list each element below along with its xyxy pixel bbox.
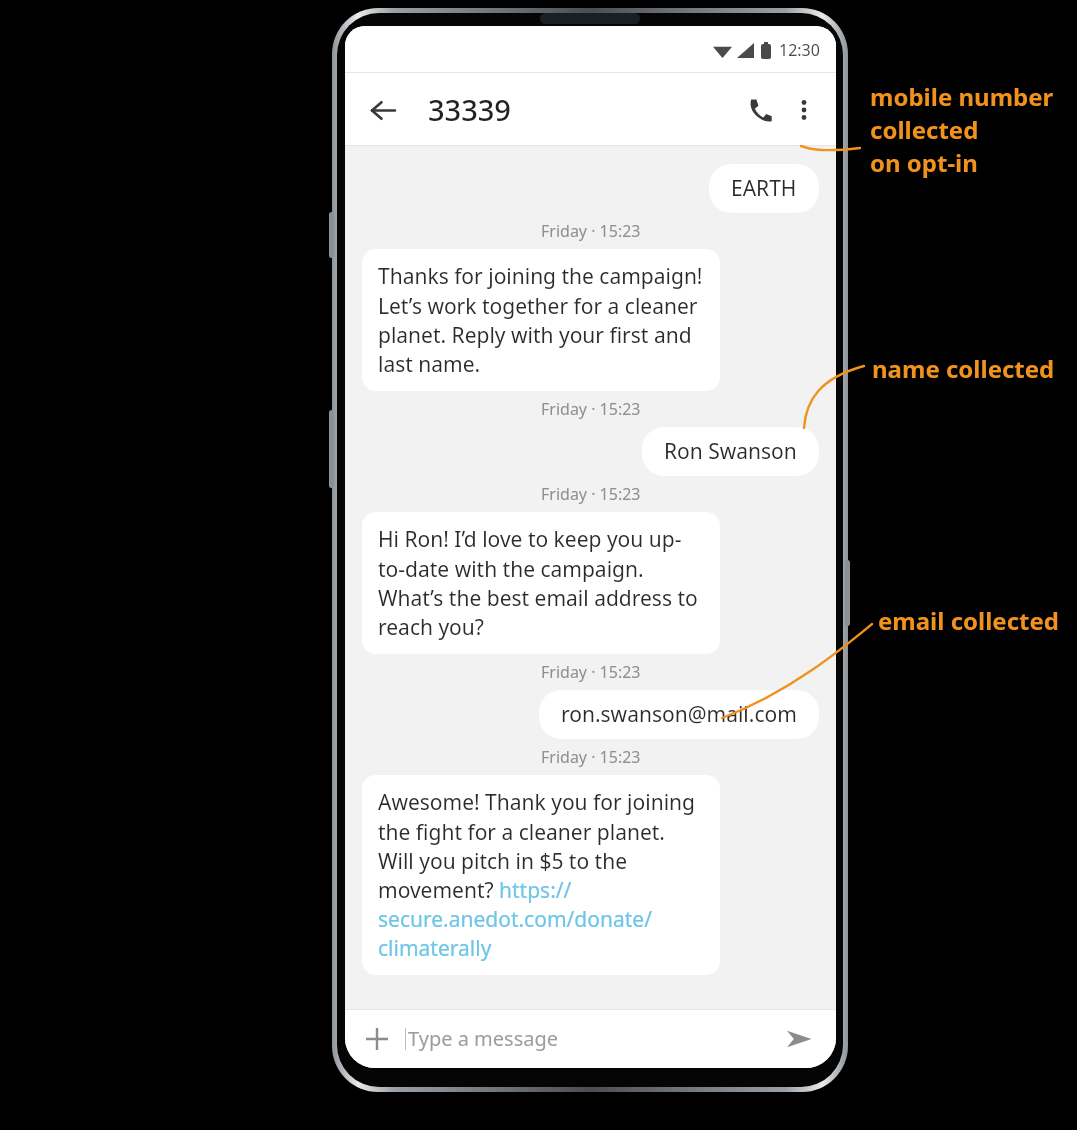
staticText: ron.swanson@mail.com: [561, 700, 797, 729]
staticText: Thanks for joining the campaign! Let’s w…: [378, 262, 704, 378]
staticText: Friday · 15:23: [541, 483, 641, 505]
staticText: name collected: [872, 352, 1055, 385]
button[interactable]: More options: [784, 90, 824, 130]
staticText: Hi Ron! I’d love to keep you up-to-date …: [378, 525, 704, 641]
button[interactable]: Awesome! Thank you for joining the fight…: [362, 775, 720, 975]
staticText: Type a message: [408, 1025, 559, 1052]
button[interactable]: Send: [778, 1018, 820, 1060]
button[interactable]: Ron Swanson: [642, 427, 819, 476]
button[interactable]: Type a message: [408, 1025, 778, 1052]
staticText: email collected: [878, 604, 1059, 637]
staticText: 12:30: [779, 39, 820, 61]
staticText: EARTH: [731, 174, 797, 203]
staticText: mobile number: [870, 80, 1054, 113]
button[interactable]: Add attachment: [357, 1019, 397, 1059]
staticText: collected: [870, 113, 979, 146]
staticText: Friday · 15:23: [541, 398, 641, 420]
button[interactable]: Call: [736, 86, 784, 134]
staticText: Friday · 15:23: [541, 220, 641, 242]
staticText: Friday · 15:23: [541, 661, 641, 683]
button[interactable]: Back: [361, 88, 405, 132]
staticText: 33339: [428, 90, 511, 129]
staticText: Friday · 15:23: [541, 746, 641, 768]
button[interactable]: EARTH: [709, 164, 819, 213]
button[interactable]: Thanks for joining the campaign! Let’s w…: [362, 249, 720, 391]
staticText: Ron Swanson: [664, 437, 797, 466]
staticText: on opt-in: [870, 146, 978, 179]
staticText: Awesome! Thank you for joining the fight…: [378, 788, 704, 962]
button[interactable]: ron.swanson@mail.com: [539, 690, 819, 739]
button[interactable]: Hi Ron! I’d love to keep you up-to-date …: [362, 512, 720, 654]
